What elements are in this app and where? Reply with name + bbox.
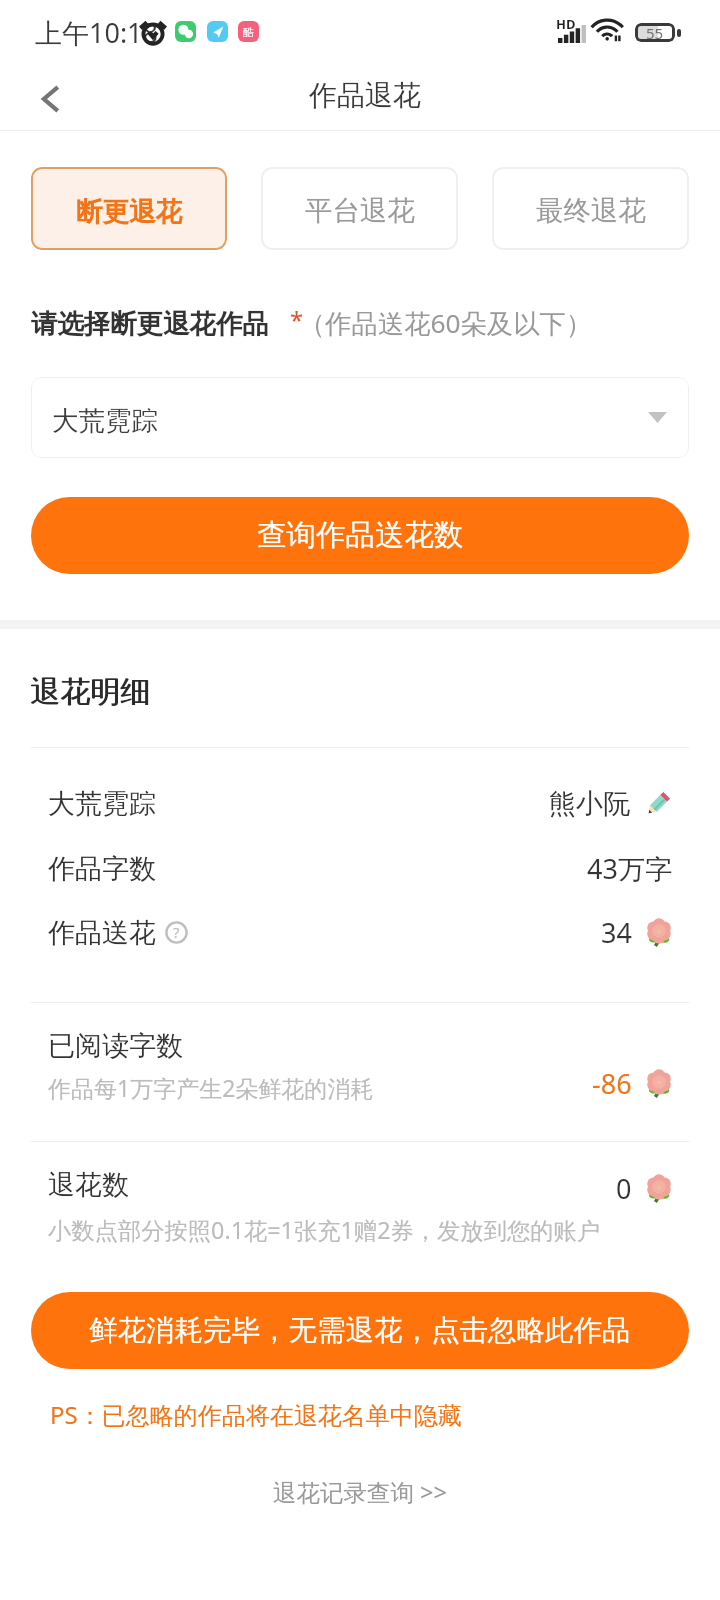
staticText: 鲜花消耗完毕，无需退花，点击忽略此作品 xyxy=(89,1313,631,1349)
button[interactable]: 退花记录查询 >> xyxy=(0,1473,720,1511)
staticText: 退花明细 xyxy=(30,673,150,711)
staticText: 最终退花 xyxy=(536,194,646,229)
staticText: ? xyxy=(173,922,180,942)
staticText: 退花记录查询 >> xyxy=(273,1476,447,1508)
staticText: 请选择断更退花作品 xyxy=(31,308,269,341)
staticText: 34 xyxy=(601,914,632,951)
button[interactable]: 断更退花 xyxy=(31,167,227,250)
staticText: 断更退花 xyxy=(76,195,182,228)
button[interactable]: 查询作品送花数 xyxy=(31,497,689,574)
staticText: 退花明细 xyxy=(31,673,151,711)
staticText: 酷 xyxy=(243,25,254,39)
staticText: 熊小阮 xyxy=(549,787,630,821)
staticText: （作品送花60朵及以下） xyxy=(299,305,593,341)
staticText: 0 xyxy=(616,1170,632,1207)
staticText: 作品退花 xyxy=(309,78,421,113)
button[interactable]: 平台退花 xyxy=(261,167,458,250)
staticText: 平台退花 xyxy=(305,194,415,229)
staticText: 大荒霓踪 xyxy=(48,787,156,821)
button[interactable]: 大荒霓踪 xyxy=(31,377,689,458)
staticText: HD xyxy=(556,15,576,33)
staticText: 退花数 xyxy=(48,1168,129,1202)
staticText: 43万字 xyxy=(587,850,672,887)
staticText: 作品每1万字产生2朵鲜花的消耗 xyxy=(48,1072,374,1103)
staticText: 小数点部分按照0.1花=1张充1赠2券，发放到您的账户 xyxy=(48,1214,601,1246)
staticText: 上午10:18 xyxy=(35,14,159,51)
staticText: PS：已忽略的作品将在退花名单中隐藏 xyxy=(50,1398,462,1431)
staticText: 作品字数 xyxy=(48,852,156,886)
button[interactable]: 最终退花 xyxy=(492,167,689,250)
staticText: 55 xyxy=(646,23,664,42)
staticText: -86 xyxy=(592,1065,632,1102)
staticText: 查询作品送花数 xyxy=(257,517,464,554)
button[interactable]: Back xyxy=(25,73,77,125)
staticText: 已阅读字数 xyxy=(48,1029,183,1063)
staticText: 大荒霓踪 xyxy=(52,404,158,437)
staticText: * xyxy=(290,303,304,336)
staticText: 作品送花 xyxy=(48,916,156,950)
button[interactable]: 鲜花消耗完毕，无需退花，点击忽略此作品 xyxy=(31,1292,689,1369)
